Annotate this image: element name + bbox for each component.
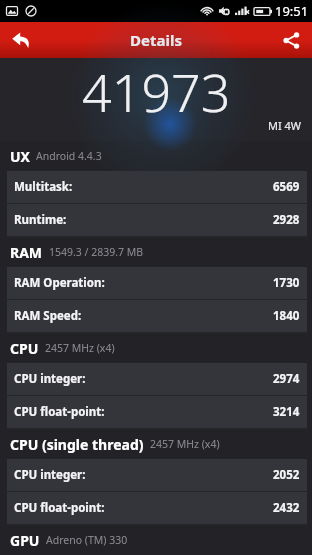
- button[interactable]: CPU float-point:: [7, 492, 307, 524]
- staticText: Multitask:: [14, 179, 73, 195]
- staticText: CPU integer:: [14, 371, 86, 387]
- button[interactable]: CPU integer:: [7, 459, 307, 491]
- button[interactable]: CPU float-point:: [7, 396, 307, 428]
- button[interactable]: RAM Operation:: [7, 267, 307, 299]
- staticText: 2928: [273, 212, 300, 228]
- button[interactable]: Back: [0, 22, 42, 58]
- staticText: CPU float-point:: [14, 404, 105, 420]
- staticText: CPU (single thread): [10, 435, 144, 454]
- staticText: 1840: [273, 308, 300, 324]
- staticText: Android 4.4.3: [36, 149, 102, 163]
- staticText: GPU: [10, 531, 40, 550]
- staticText: 2052: [273, 467, 300, 483]
- staticText: 2457 MHz (x4): [150, 437, 220, 451]
- staticText: CPU float-point:: [14, 500, 105, 516]
- button[interactable]: CPU integer:: [7, 363, 307, 395]
- button[interactable]: Share: [270, 22, 312, 58]
- staticText: RAM Speed:: [14, 308, 82, 324]
- staticText: 2432: [273, 500, 300, 516]
- staticText: 3214: [273, 404, 300, 420]
- staticText: 41973: [82, 56, 231, 127]
- button[interactable]: Multitask:: [7, 171, 307, 203]
- staticText: 6569: [273, 179, 300, 195]
- staticText: Details: [130, 30, 182, 50]
- staticText: 19:51: [275, 2, 309, 20]
- staticText: 1549.3 / 2839.7 MB: [49, 245, 144, 259]
- staticText: 2457 MHz (x4): [45, 341, 115, 355]
- button[interactable]: RAM Speed:: [7, 300, 307, 332]
- button[interactable]: Runtime:: [7, 204, 307, 236]
- staticText: 1730: [273, 275, 300, 291]
- staticText: Runtime:: [14, 212, 67, 228]
- staticText: Adreno (TM) 330: [46, 533, 128, 547]
- staticText: RAM Operation:: [14, 275, 105, 291]
- staticText: RAM: [10, 243, 43, 262]
- staticText: CPU: [10, 339, 39, 358]
- staticText: CPU integer:: [14, 467, 86, 483]
- staticText: UX: [10, 147, 30, 166]
- staticText: MI 4W: [268, 118, 302, 133]
- staticText: 2974: [273, 371, 300, 387]
